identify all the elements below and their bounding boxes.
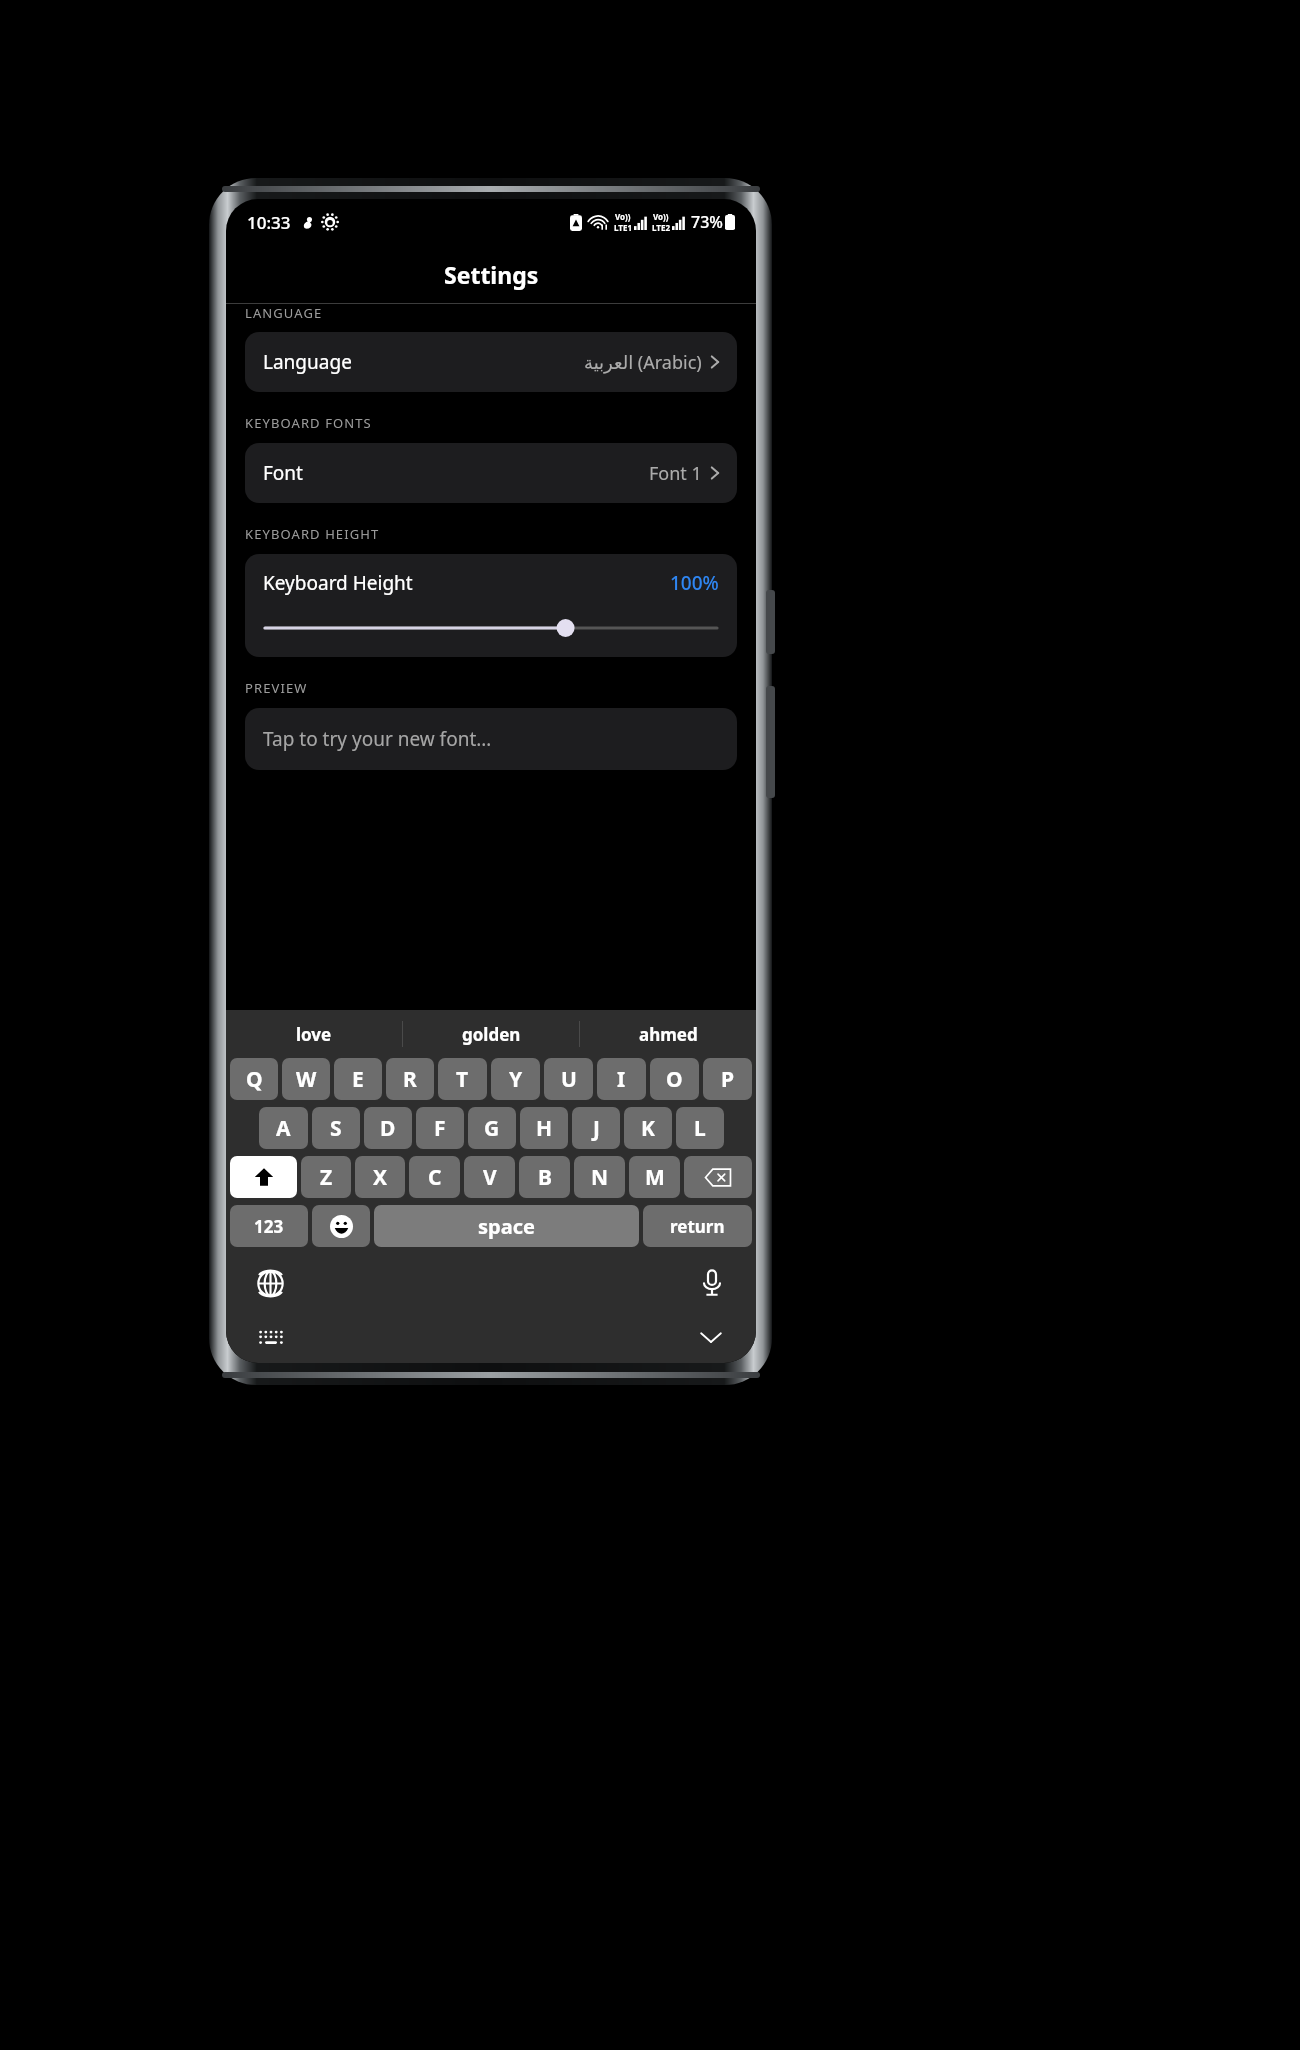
staticText: Vo)) bbox=[653, 211, 669, 222]
button[interactable]: I bbox=[597, 1058, 646, 1100]
button[interactable]: N bbox=[574, 1156, 625, 1198]
button[interactable]: Voice input bbox=[692, 1263, 732, 1303]
button[interactable]: Z bbox=[301, 1156, 351, 1198]
button[interactable]: K bbox=[624, 1107, 672, 1149]
button[interactable]: love bbox=[226, 1010, 402, 1058]
staticText: J bbox=[593, 1114, 600, 1143]
button[interactable]: B bbox=[519, 1156, 570, 1198]
staticText: U bbox=[561, 1065, 577, 1094]
staticText: Q bbox=[246, 1065, 263, 1094]
button[interactable]: Font bbox=[245, 443, 737, 503]
button[interactable]: Shift bbox=[230, 1156, 297, 1198]
button[interactable]: F bbox=[416, 1107, 464, 1149]
staticText: return bbox=[670, 1215, 725, 1238]
staticText: T bbox=[456, 1065, 469, 1094]
staticText: 73% bbox=[691, 211, 723, 233]
staticText: Settings bbox=[444, 259, 539, 290]
button[interactable]: Emoji bbox=[312, 1205, 370, 1247]
staticText: 10:33 bbox=[247, 211, 291, 234]
staticText: Font bbox=[263, 460, 303, 486]
button[interactable]: X bbox=[355, 1156, 405, 1198]
button[interactable]: golden bbox=[403, 1010, 579, 1058]
staticText: KEYBOARD FONTS bbox=[245, 414, 372, 432]
staticText: B bbox=[538, 1163, 552, 1192]
staticText: Keyboard Height bbox=[263, 570, 413, 596]
button[interactable]: Y bbox=[491, 1058, 540, 1100]
staticText: Language bbox=[263, 349, 352, 375]
staticText: ahmed bbox=[639, 1023, 698, 1046]
staticText: D bbox=[380, 1114, 396, 1143]
staticText: X bbox=[373, 1163, 388, 1192]
staticText: العربية (Arabic) bbox=[584, 350, 702, 375]
button[interactable]: Hide keyboard bbox=[694, 1320, 728, 1354]
staticText: W bbox=[296, 1065, 317, 1094]
staticText: A bbox=[276, 1114, 291, 1143]
button[interactable]: U bbox=[544, 1058, 593, 1100]
button[interactable]: E bbox=[334, 1058, 382, 1100]
button[interactable]: M bbox=[629, 1156, 680, 1198]
staticText: C bbox=[428, 1163, 442, 1192]
button[interactable]: J bbox=[572, 1107, 620, 1149]
button[interactable]: O bbox=[650, 1058, 699, 1100]
button[interactable]: G bbox=[468, 1107, 516, 1149]
staticText: Font 1 bbox=[649, 461, 702, 486]
staticText: space bbox=[478, 1213, 535, 1240]
staticText: O bbox=[666, 1065, 683, 1094]
staticText: L bbox=[694, 1114, 706, 1143]
button[interactable]: R bbox=[386, 1058, 434, 1100]
staticText: K bbox=[641, 1114, 655, 1143]
staticText: E bbox=[352, 1065, 364, 1094]
staticText: M bbox=[645, 1163, 665, 1192]
button[interactable]: Q bbox=[230, 1058, 278, 1100]
staticText: N bbox=[591, 1163, 609, 1192]
staticText: KEYBOARD HEIGHT bbox=[245, 525, 380, 543]
button[interactable]: S bbox=[312, 1107, 360, 1149]
staticText: Y bbox=[509, 1065, 523, 1094]
button[interactable]: Language bbox=[245, 332, 737, 392]
button[interactable]: W bbox=[282, 1058, 330, 1100]
button[interactable]: space bbox=[374, 1205, 639, 1247]
button[interactable]: return bbox=[643, 1205, 752, 1247]
staticText: LTE1 bbox=[614, 222, 632, 233]
staticText: 123 bbox=[254, 1215, 284, 1238]
staticText: love bbox=[296, 1023, 332, 1046]
staticText: H bbox=[536, 1114, 553, 1143]
button[interactable]: V bbox=[464, 1156, 515, 1198]
staticText: S bbox=[330, 1114, 342, 1143]
staticText: G bbox=[484, 1114, 500, 1143]
button[interactable]: 123 bbox=[230, 1205, 308, 1247]
staticText: PREVIEW bbox=[245, 679, 308, 697]
button[interactable]: Tap to try your new font… bbox=[245, 708, 737, 770]
staticText: Tap to try your new font… bbox=[263, 726, 492, 752]
button[interactable]: Backspace bbox=[684, 1156, 752, 1198]
button[interactable]: ahmed bbox=[580, 1010, 756, 1058]
button[interactable]: P bbox=[703, 1058, 752, 1100]
staticText: F bbox=[434, 1114, 446, 1143]
staticText: LTE2 bbox=[652, 222, 670, 233]
staticText: Vo)) bbox=[615, 211, 631, 222]
staticText: LANGUAGE bbox=[245, 304, 323, 318]
button[interactable]: A bbox=[259, 1107, 308, 1149]
button[interactable]: Keyboard Height bbox=[245, 554, 737, 657]
button[interactable]: Keyboard layout bbox=[254, 1320, 288, 1354]
staticText: P bbox=[721, 1065, 735, 1094]
staticText: Z bbox=[320, 1163, 333, 1192]
staticText: 100% bbox=[670, 570, 719, 596]
staticText: R bbox=[403, 1065, 417, 1094]
button[interactable]: L bbox=[676, 1107, 724, 1149]
button[interactable]: D bbox=[364, 1107, 412, 1149]
button[interactable]: Change language bbox=[250, 1263, 290, 1303]
staticText: golden bbox=[462, 1023, 521, 1046]
staticText: I bbox=[617, 1065, 626, 1094]
button[interactable]: T bbox=[438, 1058, 487, 1100]
button[interactable]: H bbox=[520, 1107, 568, 1149]
button[interactable]: C bbox=[409, 1156, 460, 1198]
staticText: V bbox=[483, 1163, 497, 1192]
